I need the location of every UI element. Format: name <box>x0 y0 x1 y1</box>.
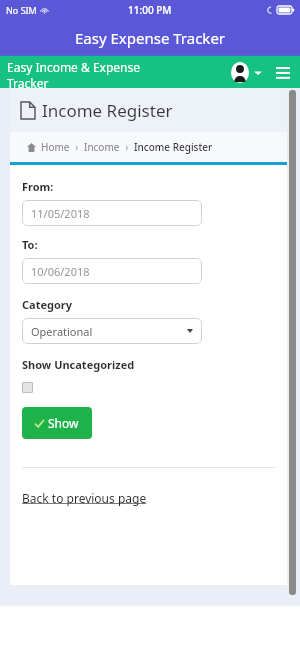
staticText: Show Uncategorized <box>22 357 135 372</box>
button[interactable]: Back to previous page <box>22 490 147 506</box>
staticText: Easy Expense Tracker <box>75 28 226 48</box>
button[interactable]: Menu <box>274 64 292 82</box>
staticText: Tracker <box>7 75 49 88</box>
staticText: Home <box>41 140 70 154</box>
staticText: Income <box>84 140 120 154</box>
staticText: 10/06/2018 <box>31 264 90 279</box>
staticText: From: <box>22 179 54 194</box>
button[interactable]: Operational <box>22 318 202 344</box>
button[interactable]: Account <box>231 62 249 83</box>
staticText: Show <box>48 415 79 431</box>
staticText: To: <box>22 237 38 252</box>
staticText: Income Register <box>42 99 173 122</box>
button[interactable]: 10/06/2018 <box>22 258 202 284</box>
staticText: Income Register <box>134 140 213 154</box>
button[interactable]: Show <box>22 407 92 439</box>
staticText: Easy Income & Expense <box>7 59 141 75</box>
staticText: › <box>120 140 134 154</box>
staticText: Category <box>22 297 73 312</box>
staticText: No SIM <box>6 4 37 16</box>
button[interactable]: Account menu <box>253 68 263 78</box>
staticText: › <box>70 140 84 154</box>
staticText: Operational <box>31 324 93 339</box>
staticText: Back to previous page <box>22 490 147 506</box>
staticText: 11:00 PM <box>128 3 172 17</box>
button[interactable]: Income <box>84 140 120 154</box>
staticText: 11/05/2018 <box>31 206 90 221</box>
button[interactable]: 11/05/2018 <box>22 200 202 226</box>
button[interactable]: Show Uncategorized checkbox <box>22 382 33 393</box>
button[interactable]: Home <box>41 140 70 154</box>
